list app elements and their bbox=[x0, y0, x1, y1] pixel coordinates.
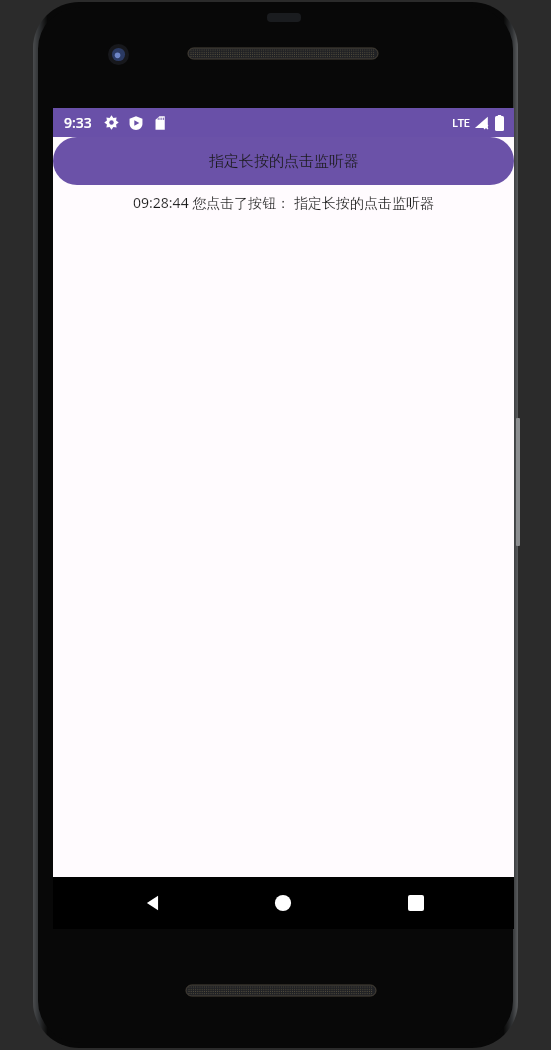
staticText: 09:28:44 您点击了按钮： 指定长按的点击监听器 bbox=[133, 193, 434, 212]
staticText: LTE bbox=[452, 115, 470, 130]
staticText: 指定长按的点击监听器 bbox=[209, 152, 359, 171]
button[interactable]: 指定长按的点击监听器 bbox=[53, 137, 514, 185]
button[interactable]: Recent apps bbox=[390, 877, 442, 929]
button[interactable]: Home bbox=[257, 877, 309, 929]
staticText: 9:33 bbox=[64, 113, 92, 132]
button[interactable]: Back bbox=[127, 877, 179, 929]
